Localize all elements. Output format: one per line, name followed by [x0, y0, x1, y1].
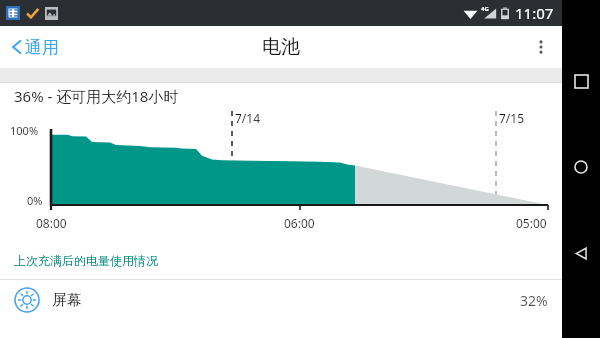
staticText: 上次充满后的电量使用情况: [14, 253, 158, 268]
staticText: 通用: [25, 37, 59, 58]
staticText: 屏幕: [52, 291, 82, 310]
button[interactable]: 上次充满后的电量使用情况: [0, 249, 562, 271]
staticText: 05:00: [516, 215, 547, 231]
staticText: 100%: [10, 123, 39, 138]
button[interactable]: 屏幕: [0, 280, 562, 320]
staticText: 0%: [27, 193, 43, 208]
staticText: 电池: [262, 35, 300, 59]
staticText: 7/14: [235, 110, 261, 126]
staticText: 11:07: [515, 3, 554, 23]
staticText: 06:00: [284, 215, 315, 231]
button[interactable]: Back: [562, 234, 600, 272]
button[interactable]: Recents: [562, 62, 600, 100]
staticText: 36% - 还可用大约18小时: [14, 86, 179, 106]
button[interactable]: More options: [520, 26, 562, 68]
staticText: 32%: [520, 291, 548, 310]
button[interactable]: 通用: [0, 26, 71, 68]
staticText: 7/15: [499, 110, 525, 126]
staticText: 08:00: [36, 215, 67, 231]
staticText: 4G: [481, 5, 489, 13]
button[interactable]: Home: [562, 148, 600, 186]
